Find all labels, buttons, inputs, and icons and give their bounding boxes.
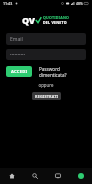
button[interactable]: ACCEDI — [6, 66, 32, 77]
staticText: 11:43 — [3, 1, 13, 6]
staticText: 48% — [76, 1, 83, 6]
button[interactable]: •••••••••• — [6, 49, 86, 60]
button[interactable]: REGISTRATI — [32, 92, 61, 100]
staticText: •••••••••• — [10, 52, 26, 57]
button[interactable]: Search — [23, 168, 46, 184]
button[interactable]: Email — [6, 33, 86, 45]
staticText: QUOTIDIANO — [43, 15, 70, 20]
button[interactable]: Home — [0, 168, 23, 184]
staticText: oppure — [0, 82, 92, 88]
staticText: DEL VENETO — [43, 20, 67, 25]
staticText: Email — [10, 36, 23, 43]
button[interactable]: Profile — [69, 168, 92, 184]
button[interactable]: Password dimenticata? — [39, 66, 86, 77]
staticText: ACCEDI — [11, 69, 28, 75]
button[interactable]: Messages — [46, 168, 69, 184]
staticText: Password dimenticata? — [39, 66, 86, 77]
staticText: REGISTRATI — [35, 94, 59, 99]
staticText: QV — [22, 14, 35, 26]
